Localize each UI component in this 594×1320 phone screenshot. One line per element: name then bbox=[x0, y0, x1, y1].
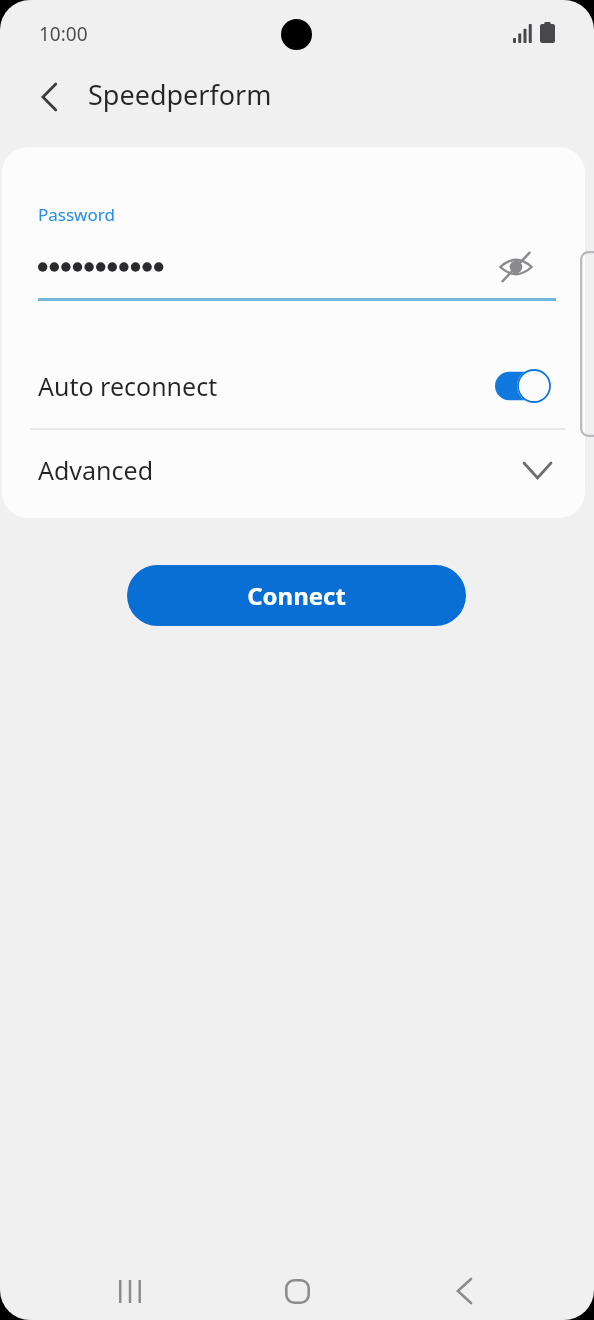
staticText: Connect bbox=[247, 579, 346, 612]
staticText: Auto reconnect bbox=[38, 369, 218, 403]
button[interactable]: Back bbox=[26, 74, 72, 120]
button[interactable]: Recents bbox=[98, 1259, 162, 1320]
staticText: 10:00 bbox=[39, 21, 88, 47]
button[interactable]: Connect bbox=[127, 565, 466, 626]
button[interactable]: Auto reconnect bbox=[2, 344, 585, 428]
button[interactable]: Advanced bbox=[2, 430, 585, 510]
button[interactable] bbox=[32, 239, 472, 295]
staticText: Advanced bbox=[38, 453, 154, 487]
staticText: Speedperform bbox=[88, 76, 272, 113]
button[interactable]: Back bbox=[432, 1259, 496, 1320]
staticText: Password bbox=[38, 203, 115, 226]
button[interactable]: Home bbox=[265, 1259, 329, 1320]
button[interactable]: Auto reconnect bbox=[495, 369, 551, 403]
button[interactable]: Show password bbox=[486, 237, 546, 297]
